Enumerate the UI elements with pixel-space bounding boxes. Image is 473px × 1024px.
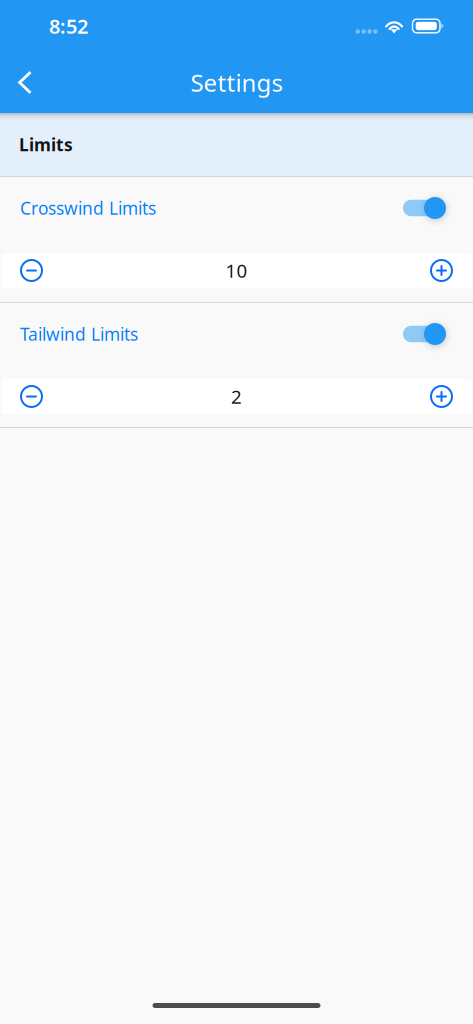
staticText: Tailwind Limits <box>20 322 138 345</box>
staticText: 2 <box>231 384 242 409</box>
button[interactable]: Decrease <box>1 253 62 288</box>
button[interactable]: Increase <box>411 379 472 414</box>
staticText: Limits <box>19 133 73 156</box>
button[interactable]: Crosswind Limits <box>0 177 473 239</box>
staticText: 8:52 <box>49 13 88 39</box>
staticText: Crosswind Limits <box>20 196 156 219</box>
staticText: Settings <box>190 67 282 98</box>
button[interactable]: Decrease <box>1 379 62 414</box>
button[interactable]: Tailwind Limits <box>0 303 473 365</box>
button[interactable]: Increase <box>411 253 472 288</box>
button[interactable]: Back <box>0 62 48 102</box>
staticText: 10 <box>225 258 247 283</box>
